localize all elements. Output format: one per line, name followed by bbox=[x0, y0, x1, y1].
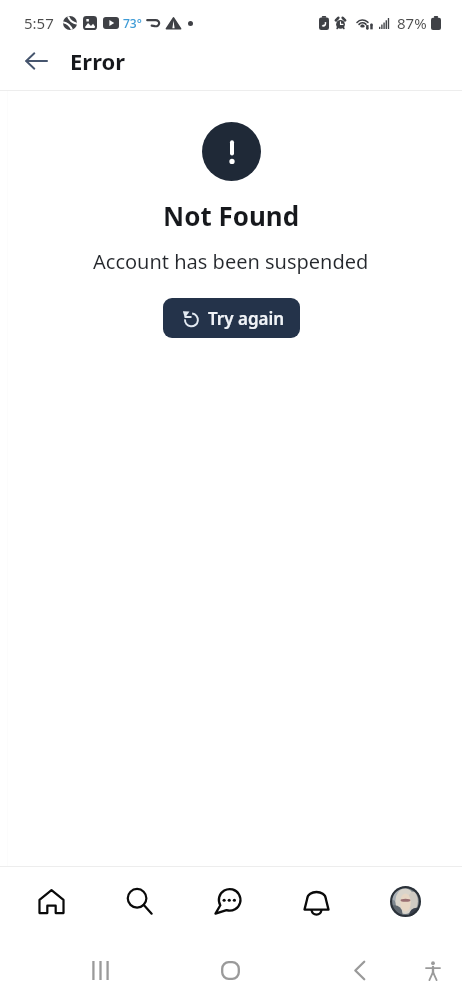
button[interactable]: Back bbox=[336, 947, 383, 994]
button[interactable]: Search bbox=[95, 867, 183, 935]
button[interactable]: Back bbox=[16, 41, 56, 81]
button[interactable]: Try again bbox=[163, 298, 300, 338]
staticText: 87% bbox=[397, 13, 427, 33]
button[interactable]: Profile bbox=[361, 867, 450, 935]
staticText: Not Found bbox=[163, 198, 300, 233]
button[interactable]: Accessibility bbox=[409, 947, 456, 994]
staticText: 73° bbox=[123, 15, 142, 31]
staticText: 5:57 bbox=[24, 13, 54, 33]
button[interactable]: Home bbox=[207, 947, 254, 994]
button[interactable]: Notifications bbox=[272, 867, 361, 935]
staticText: Error bbox=[70, 46, 126, 76]
staticText: Account has been suspended bbox=[93, 248, 369, 275]
staticText: Try again bbox=[208, 307, 285, 330]
button[interactable]: Recents bbox=[77, 947, 124, 994]
button[interactable]: Messages bbox=[183, 867, 272, 935]
button[interactable]: Home bbox=[7, 867, 95, 935]
